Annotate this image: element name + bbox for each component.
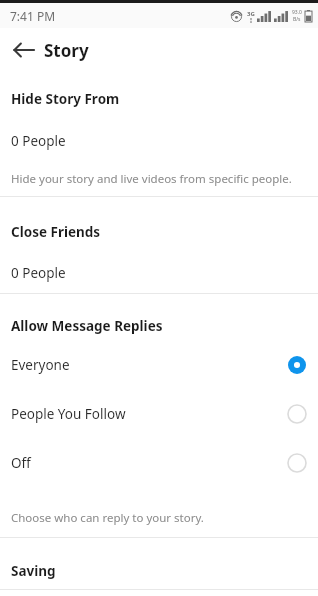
staticText: Everyone [11, 356, 70, 374]
button[interactable]: 0 People [0, 131, 318, 151]
staticText: Saving [11, 562, 56, 580]
button[interactable]: Close Friends [0, 222, 318, 242]
staticText: Close Friends [11, 223, 101, 241]
button[interactable]: Everyone [0, 343, 318, 387]
staticText: Story [44, 39, 89, 62]
staticText: Hide Story From [11, 90, 120, 108]
button[interactable]: Saving [0, 561, 318, 581]
staticText: Hide your story and live videos from spe… [11, 171, 292, 187]
button[interactable]: Off [0, 441, 318, 485]
staticText: Off [11, 454, 31, 472]
staticText: Allow Message Replies [11, 317, 163, 335]
button[interactable]: Allow Message Replies [0, 316, 318, 336]
staticText: B/s [293, 16, 301, 23]
button[interactable]: 0 People [0, 263, 318, 283]
staticText: Choose who can reply to your story. [11, 510, 204, 526]
staticText: 0 People [11, 264, 66, 282]
staticText: 93.0 [292, 9, 302, 16]
staticText: People You Follow [11, 405, 126, 423]
button[interactable]: Back [6, 32, 42, 68]
staticText: 7:41 PM [10, 8, 56, 24]
button[interactable]: Hide Story From [0, 89, 318, 109]
staticText: 3G [247, 10, 255, 18]
staticText: 0 People [11, 132, 66, 150]
button[interactable]: People You Follow [0, 392, 318, 436]
